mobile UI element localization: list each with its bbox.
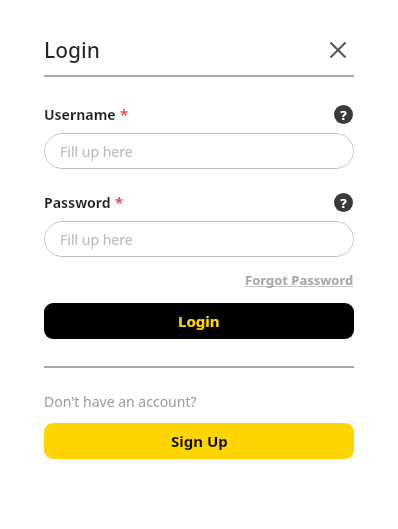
button[interactable]: Fill up here [44, 221, 354, 257]
staticText: Login [178, 311, 220, 331]
staticText: Fill up here [60, 142, 133, 161]
staticText: ? [340, 106, 347, 124]
staticText: Password [44, 193, 111, 212]
staticText: ? [340, 194, 347, 212]
staticText: * [120, 104, 129, 124]
staticText: Login [44, 36, 100, 65]
button[interactable]: Fill up here [44, 133, 354, 169]
staticText: Don't have an account? [44, 392, 197, 411]
button[interactable]: Sign Up [44, 423, 354, 459]
staticText: Username [44, 105, 116, 124]
button[interactable]: Help for Password [332, 191, 354, 213]
button[interactable]: Forgot Password [245, 271, 354, 289]
staticText: Forgot Password [245, 271, 354, 289]
button[interactable]: Login [44, 303, 354, 339]
staticText: Fill up here [60, 230, 133, 249]
staticText: * [115, 192, 124, 212]
button[interactable]: Close [322, 34, 354, 66]
staticText: Sign Up [171, 431, 228, 451]
button[interactable]: Help for Username [332, 103, 354, 125]
